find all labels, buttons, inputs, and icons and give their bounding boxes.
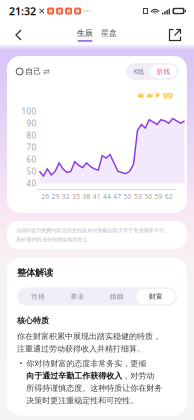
staticText: 21:32 <box>9 4 36 18</box>
button[interactable]: 生辰 <box>77 28 93 42</box>
staticText: 44 <box>103 192 111 201</box>
staticText: 决策时更注重稳定性和可控性。 <box>26 396 138 405</box>
staticText: 100 <box>21 106 36 117</box>
staticText: 事业 <box>70 292 84 301</box>
staticText: 所得持谨慎态度。这种特质让你在财务 <box>26 383 162 393</box>
staticText: 财富 <box>149 292 163 301</box>
staticText: K线 <box>133 67 144 76</box>
staticText: 80 <box>26 130 36 141</box>
staticText: 性格 <box>31 292 45 301</box>
button[interactable]: Share <box>161 22 189 48</box>
staticText: 向于通过辛勤工作获得收入 <box>26 371 122 381</box>
staticText: 折线 <box>156 67 170 75</box>
staticText: ，对劳动 <box>122 371 154 381</box>
staticText: 29 <box>51 192 59 201</box>
button[interactable]: 星盘 <box>101 28 117 42</box>
staticText: 40 <box>26 178 36 189</box>
staticText: 当前内容为免费内容,仅供您在娱乐中探索自我,不等于专业测评,不代 <box>16 227 164 234</box>
staticText: 90 <box>26 118 36 129</box>
button[interactable]: 性格 <box>18 289 58 304</box>
staticText: 47 <box>113 192 121 201</box>
staticText: 41 <box>93 192 101 201</box>
staticText: 你在财富积累中展现出踏实稳健的特质， <box>17 331 161 341</box>
button[interactable]: Back <box>5 22 33 48</box>
staticText: 99 <box>163 89 173 101</box>
staticText: 50 <box>124 192 132 201</box>
button[interactable]: 财富 <box>136 289 175 304</box>
button[interactable]: 折线 <box>150 65 176 78</box>
staticText: 核心特质 <box>17 316 49 325</box>
staticText: 50 <box>26 166 36 177</box>
staticText: 56 <box>144 192 152 201</box>
staticText: ⇄ <box>43 67 50 76</box>
staticText: 60 <box>26 154 36 165</box>
staticText: 35 <box>72 192 80 201</box>
button[interactable]: K线 <box>127 64 150 78</box>
staticText: 70 <box>26 142 36 153</box>
button[interactable]: 自己 <box>16 66 50 76</box>
staticText: 婚姻 <box>110 292 124 301</box>
staticText: 自己 <box>25 66 41 76</box>
staticText: 你对待财富的态度非常务实，更倾 <box>26 359 146 368</box>
staticText: 38 <box>82 192 90 201</box>
staticText: 26 <box>41 192 49 201</box>
staticText: 生辰 <box>77 28 93 38</box>
staticText: 53 <box>134 192 142 201</box>
staticText: 注重通过劳动获得收入并精打细算。 <box>17 344 145 354</box>
staticText: 62 <box>165 192 173 201</box>
staticText: 表价值评判,无任何现实指导意义。 <box>16 236 92 243</box>
staticText: 59 <box>154 192 162 201</box>
staticText: 32 <box>62 192 70 201</box>
button[interactable]: 婚姻 <box>97 289 136 304</box>
staticText: 星盘 <box>101 28 117 38</box>
button[interactable]: 事业 <box>58 289 97 304</box>
staticText: 整体解读 <box>17 267 53 278</box>
